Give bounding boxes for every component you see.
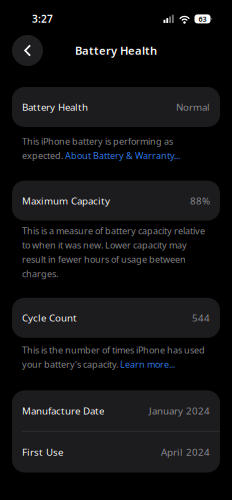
staticText: Battery Health [22,100,88,114]
staticText: 63 [198,14,206,24]
staticText: This is the number of times iPhone has u… [22,344,205,356]
staticText: charges. [22,267,58,280]
staticText: This is a measure of battery capacity re… [22,225,205,237]
staticText: Cycle Count [22,311,77,324]
staticText: Normal [176,100,210,114]
staticText: First Use [22,445,63,459]
staticText: Manufacture Date [22,404,104,417]
button[interactable]: Back [12,35,43,66]
button[interactable]: Battery Health [12,87,220,127]
staticText: About Battery & Warranty... [65,149,180,162]
staticText: Battery Health [75,43,157,58]
button[interactable]: First Use [12,431,220,472]
staticText: Learn more... [120,358,175,370]
button[interactable]: Cycle Count [12,298,220,338]
staticText: Maximum Capacity [22,194,110,207]
button[interactable]: Maximum Capacity [12,181,220,221]
staticText: 88% [190,194,210,207]
staticText: January 2024 [149,404,210,417]
staticText: to when it was new. Lower capacity may [22,239,187,251]
staticText: your battery's capacity. [22,358,120,370]
staticText: 544 [192,311,210,324]
button[interactable]: Manufacture Date [12,390,220,431]
staticText: This iPhone battery is performing as [22,135,173,147]
staticText: expected. [22,149,65,162]
staticText: 3:27 [32,12,53,26]
staticText: April 2024 [161,445,210,459]
staticText: result in fewer hours of usage between [22,253,186,265]
